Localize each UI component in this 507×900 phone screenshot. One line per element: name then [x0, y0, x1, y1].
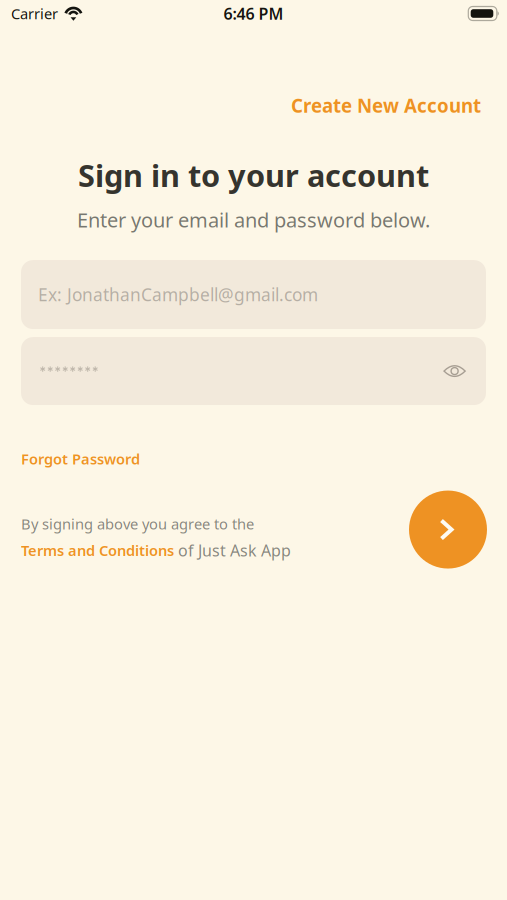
staticText: of Just Ask App: [174, 540, 291, 561]
button[interactable]: Create New Account: [289, 89, 483, 122]
staticText: Ex: JonathanCampbell@gmail.com: [38, 283, 318, 306]
staticText: 6:46 PM: [223, 3, 283, 24]
staticText: Forgot Password: [21, 449, 140, 469]
staticText: Carrier: [11, 4, 58, 23]
button[interactable]: Forgot Password: [21, 445, 140, 473]
button[interactable]: Password: [21, 337, 486, 405]
staticText: Enter your email and password below.: [77, 206, 430, 233]
button[interactable]: Show password: [435, 356, 474, 386]
staticText: Create New Account: [291, 93, 481, 118]
staticText: Terms and Conditions: [21, 541, 174, 560]
button[interactable]: Continue: [409, 491, 487, 569]
staticText: Sign in to your account: [78, 155, 429, 195]
staticText: By signing above you agree to the: [21, 514, 254, 534]
button[interactable]: Ex: JonathanCampbell@gmail.com: [21, 260, 486, 329]
button[interactable]: Terms and Conditions: [21, 541, 174, 560]
